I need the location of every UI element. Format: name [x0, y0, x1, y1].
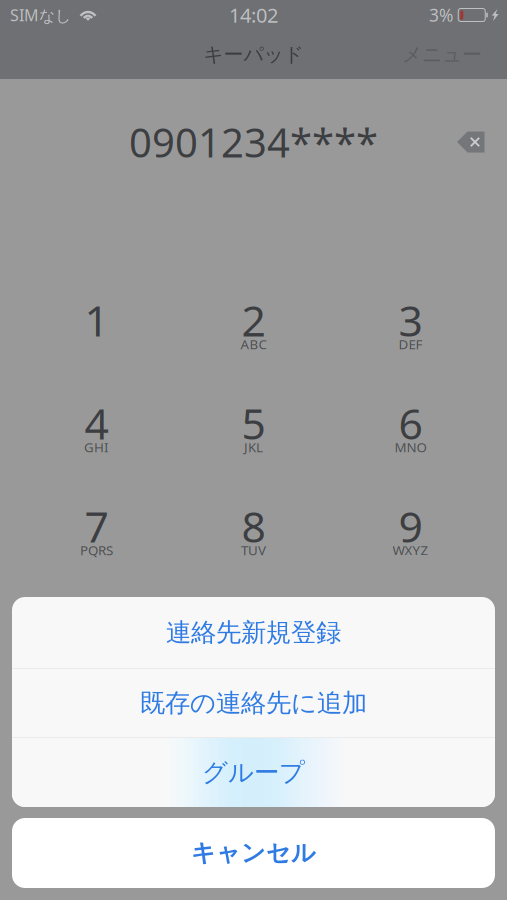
staticText: グループ: [202, 757, 305, 788]
staticText: キャンセル: [191, 838, 316, 868]
staticText: メニュー: [402, 42, 482, 67]
button[interactable]: 9: [350, 497, 470, 569]
staticText: 3%: [429, 3, 453, 26]
staticText: PQRS: [80, 541, 113, 559]
button[interactable]: メニュー: [390, 32, 494, 77]
button[interactable]: 4: [36, 394, 156, 466]
staticText: SIMなし: [10, 4, 71, 26]
button[interactable]: 1: [36, 291, 156, 363]
staticText: 3: [398, 292, 422, 348]
button[interactable]: Delete: [447, 117, 495, 167]
button[interactable]: グループ: [12, 738, 495, 807]
button[interactable]: 6: [350, 394, 470, 466]
staticText: 5: [241, 395, 265, 451]
staticText: 6: [398, 395, 422, 451]
staticText: DEF: [398, 335, 422, 353]
staticText: MNO: [394, 438, 426, 456]
staticText: 0901234****: [129, 115, 378, 168]
staticText: 9: [398, 498, 422, 554]
button[interactable]: 既存の連絡先に追加: [12, 669, 495, 737]
staticText: 4: [84, 395, 108, 451]
staticText: JKL: [244, 438, 263, 456]
staticText: WXYZ: [392, 541, 428, 559]
button[interactable]: 5: [193, 394, 313, 466]
staticText: TUV: [241, 541, 266, 559]
button[interactable]: 2: [193, 291, 313, 363]
staticText: 1: [84, 292, 108, 348]
button[interactable]: 7: [36, 497, 156, 569]
staticText: キーパッド: [203, 42, 303, 67]
staticText: 既存の連絡先に追加: [140, 687, 367, 718]
staticText: 7: [84, 498, 108, 554]
staticText: ABC: [240, 335, 266, 353]
staticText: 14:02: [229, 2, 278, 28]
button[interactable]: 連絡先新規登録: [12, 597, 495, 668]
staticText: [95, 335, 98, 353]
button[interactable]: 8: [193, 497, 313, 569]
button[interactable]: 3: [350, 291, 470, 363]
staticText: 2: [241, 292, 265, 348]
staticText: GHI: [84, 438, 109, 456]
staticText: 8: [241, 498, 265, 554]
staticText: 連絡先新規登録: [166, 617, 341, 648]
button[interactable]: キャンセル: [12, 818, 495, 888]
